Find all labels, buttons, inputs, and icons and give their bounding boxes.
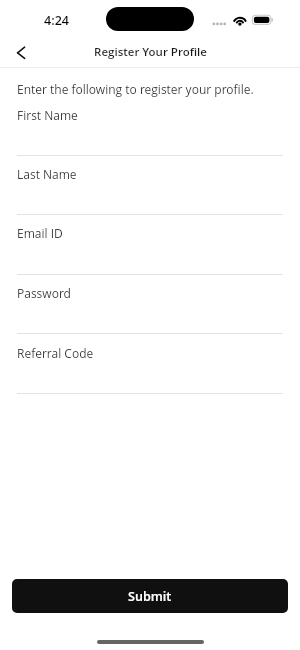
button[interactable]: Referral Code (17, 345, 283, 394)
staticText: 4:24 (44, 12, 70, 29)
staticText: Referral Code (17, 345, 94, 361)
staticText: Register Your Profile (94, 44, 207, 60)
button[interactable]: Submit (12, 579, 288, 613)
staticText: Last Name (17, 166, 77, 182)
button[interactable]: Last Name (17, 166, 283, 215)
staticText: Enter the following to register your pro… (17, 81, 254, 97)
button[interactable]: Back (0, 36, 40, 67)
button[interactable]: Password (17, 285, 283, 334)
staticText: First Name (17, 107, 78, 123)
staticText: Email ID (17, 225, 63, 241)
button[interactable]: First Name (17, 107, 283, 156)
staticText: Submit (128, 588, 172, 605)
staticText: Password (17, 285, 71, 301)
button[interactable]: Email ID (17, 225, 283, 275)
